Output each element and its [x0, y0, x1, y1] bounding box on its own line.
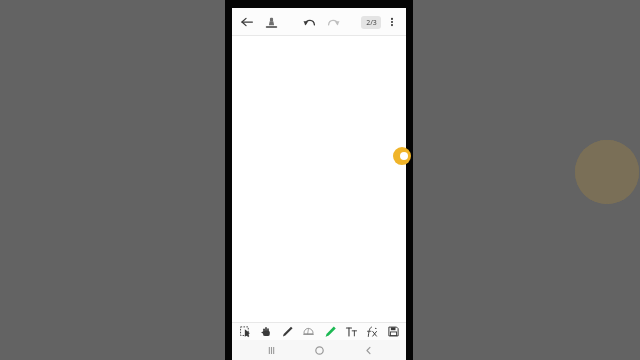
- button[interactable]: Highlighter: [322, 323, 338, 339]
- button[interactable]: Redo: [323, 12, 343, 32]
- button[interactable]: Select: [237, 323, 253, 339]
- button[interactable]: Pen: [279, 323, 295, 339]
- button[interactable]: Back: [237, 12, 257, 32]
- button[interactable]: Text: [343, 323, 359, 339]
- staticText: 2/3: [366, 18, 377, 28]
- button[interactable]: Back: [358, 340, 378, 360]
- button[interactable]: Undo: [299, 12, 319, 32]
- button[interactable]: Recent apps: [261, 340, 281, 360]
- button[interactable]: Save: [385, 323, 401, 339]
- button[interactable]: More options: [383, 13, 401, 31]
- button[interactable]: Home: [309, 340, 329, 360]
- button[interactable]: Stamp: [261, 12, 281, 32]
- button[interactable]: Hand: [258, 323, 274, 339]
- button[interactable]: Formula: [364, 323, 380, 339]
- button[interactable]: Eraser: [300, 323, 316, 339]
- button[interactable]: 2/3: [361, 16, 381, 29]
